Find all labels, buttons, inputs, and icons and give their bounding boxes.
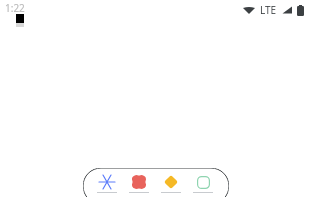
button[interactable]: Shape (91, 168, 123, 197)
staticText: LTE (260, 3, 277, 17)
button[interactable]: Shape (155, 168, 187, 197)
staticText: 1:22 (5, 1, 25, 15)
button[interactable]: Shape (123, 168, 155, 197)
button[interactable]: Shape (187, 168, 219, 197)
